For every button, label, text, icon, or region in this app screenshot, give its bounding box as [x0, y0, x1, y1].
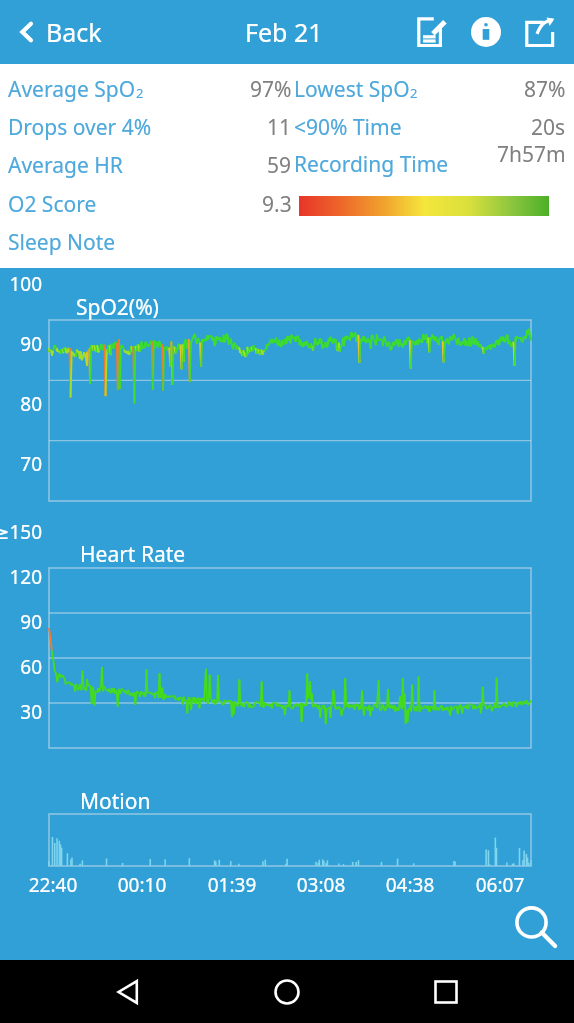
staticText: 90: [0, 331, 42, 357]
staticText: 30: [0, 699, 42, 725]
button[interactable]: Average SpO: [8, 74, 292, 104]
staticText: 90: [0, 609, 42, 635]
staticText: 60: [0, 654, 42, 680]
staticText: 80: [0, 391, 42, 417]
staticText: 9.3: [262, 190, 292, 219]
staticText: Heart Rate: [80, 540, 186, 569]
staticText: 01:39: [196, 872, 268, 898]
button[interactable]: Lowest SpO: [294, 74, 566, 104]
button[interactable]: Average HR: [8, 150, 292, 180]
staticText: 87%: [524, 75, 566, 104]
button[interactable]: Recents: [416, 962, 476, 1022]
button[interactable]: <90% Time: [294, 112, 566, 142]
staticText: 120: [0, 564, 42, 590]
staticText: 59: [267, 151, 292, 180]
staticText: 2: [410, 84, 418, 102]
button[interactable]: Home: [257, 962, 317, 1022]
staticText: 70: [0, 451, 42, 477]
button[interactable]: Drops over 4%: [8, 112, 292, 142]
button[interactable]: Back: [12, 9, 108, 55]
staticText: 20s: [531, 113, 566, 142]
button[interactable]: Edit note: [408, 8, 456, 56]
staticText: 97%: [250, 75, 292, 104]
staticText: 22:40: [17, 872, 89, 898]
staticText: ≥150: [0, 519, 42, 545]
staticText: SpO2(%): [76, 293, 159, 322]
staticText: 03:08: [285, 872, 357, 898]
staticText: Feb 21: [245, 15, 323, 49]
staticText: Back: [46, 15, 102, 49]
button[interactable]: Info: [462, 8, 510, 56]
staticText: Average HR: [8, 151, 123, 180]
button[interactable]: Back: [99, 962, 159, 1022]
staticText: Lowest SpO: [294, 75, 410, 104]
staticText: Drops over 4%: [8, 113, 152, 142]
staticText: 06:07: [464, 872, 536, 898]
staticText: 100: [0, 271, 42, 297]
staticText: Average SpO: [8, 75, 136, 104]
staticText: Sleep Note: [8, 228, 116, 257]
staticText: Recording Time: [294, 150, 449, 179]
button[interactable]: O2 Score: [8, 189, 292, 219]
staticText: 00:10: [106, 872, 178, 898]
staticText: O2 Score: [8, 190, 97, 219]
staticText: 7h57m: [497, 140, 566, 169]
staticText: Motion: [80, 787, 151, 816]
staticText: 04:38: [374, 872, 446, 898]
staticText: <90% Time: [294, 113, 402, 142]
staticText: 11: [267, 113, 292, 142]
button[interactable]: Share: [516, 8, 564, 56]
button[interactable]: Sleep Note: [8, 228, 116, 257]
button[interactable]: Search: [508, 900, 564, 956]
staticText: 2: [136, 84, 144, 102]
